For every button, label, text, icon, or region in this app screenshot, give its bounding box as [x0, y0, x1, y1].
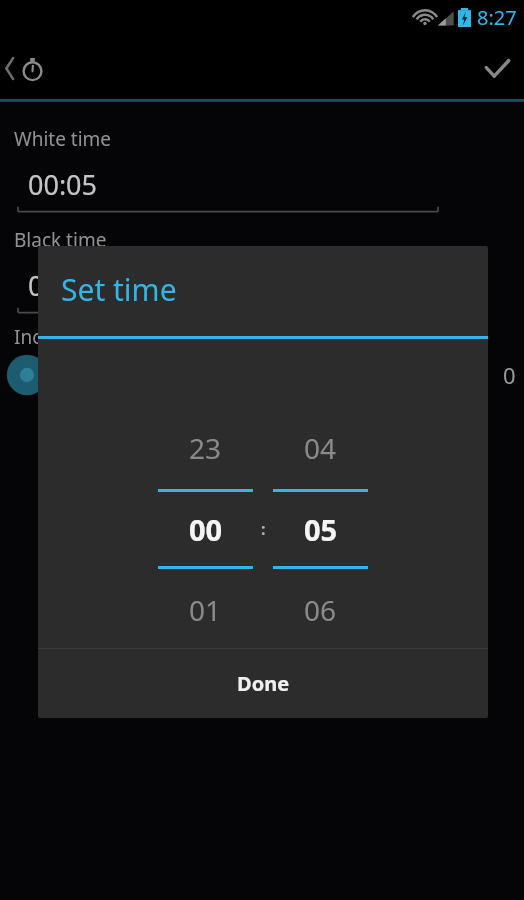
- staticText: 00:05: [28, 166, 98, 203]
- staticText: 8:27: [477, 4, 517, 31]
- button[interactable]: [6, 354, 48, 396]
- button[interactable]: Confirm: [471, 45, 524, 92]
- button[interactable]: 04: [273, 429, 368, 629]
- staticText: Black time: [14, 227, 107, 253]
- staticText: Set time: [61, 269, 177, 310]
- staticText: Done: [237, 670, 290, 697]
- staticText: 0: [28, 267, 44, 304]
- button[interactable]: 23: [158, 429, 253, 629]
- button[interactable]: Done: [38, 649, 488, 718]
- staticText: :: [261, 518, 266, 540]
- button[interactable]: Navigate up: [0, 45, 58, 92]
- staticText: White time: [14, 126, 112, 152]
- staticText: 0: [503, 360, 516, 390]
- staticText: 06: [304, 591, 337, 629]
- staticText: 05: [304, 510, 338, 549]
- staticText: 01: [189, 591, 222, 629]
- staticText: Inc: [14, 324, 42, 350]
- staticText: 04: [304, 429, 337, 467]
- staticText: 23: [189, 429, 222, 467]
- staticText: 00: [189, 510, 223, 549]
